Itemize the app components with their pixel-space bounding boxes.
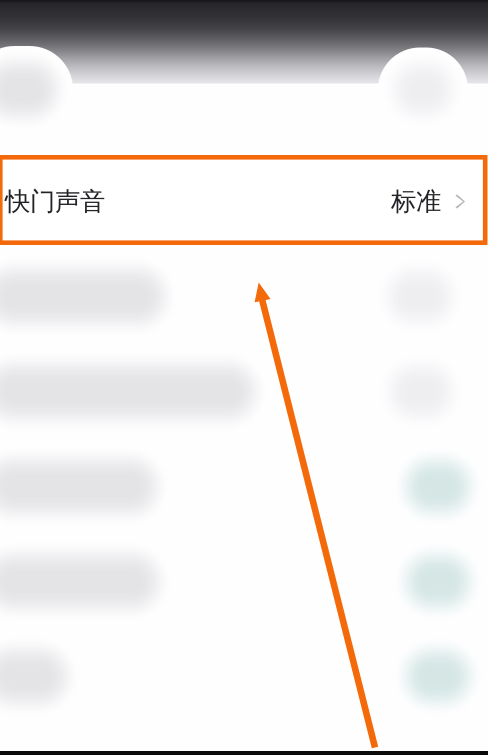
button[interactable] xyxy=(0,629,488,724)
staticText: 快门声音 xyxy=(5,186,105,217)
button[interactable]: 快门声音 xyxy=(0,154,488,249)
button[interactable] xyxy=(0,439,488,534)
button[interactable] xyxy=(0,249,488,344)
staticText: 标准 xyxy=(391,186,441,217)
button[interactable] xyxy=(0,100,488,154)
button[interactable] xyxy=(0,534,488,629)
button[interactable] xyxy=(0,344,488,439)
